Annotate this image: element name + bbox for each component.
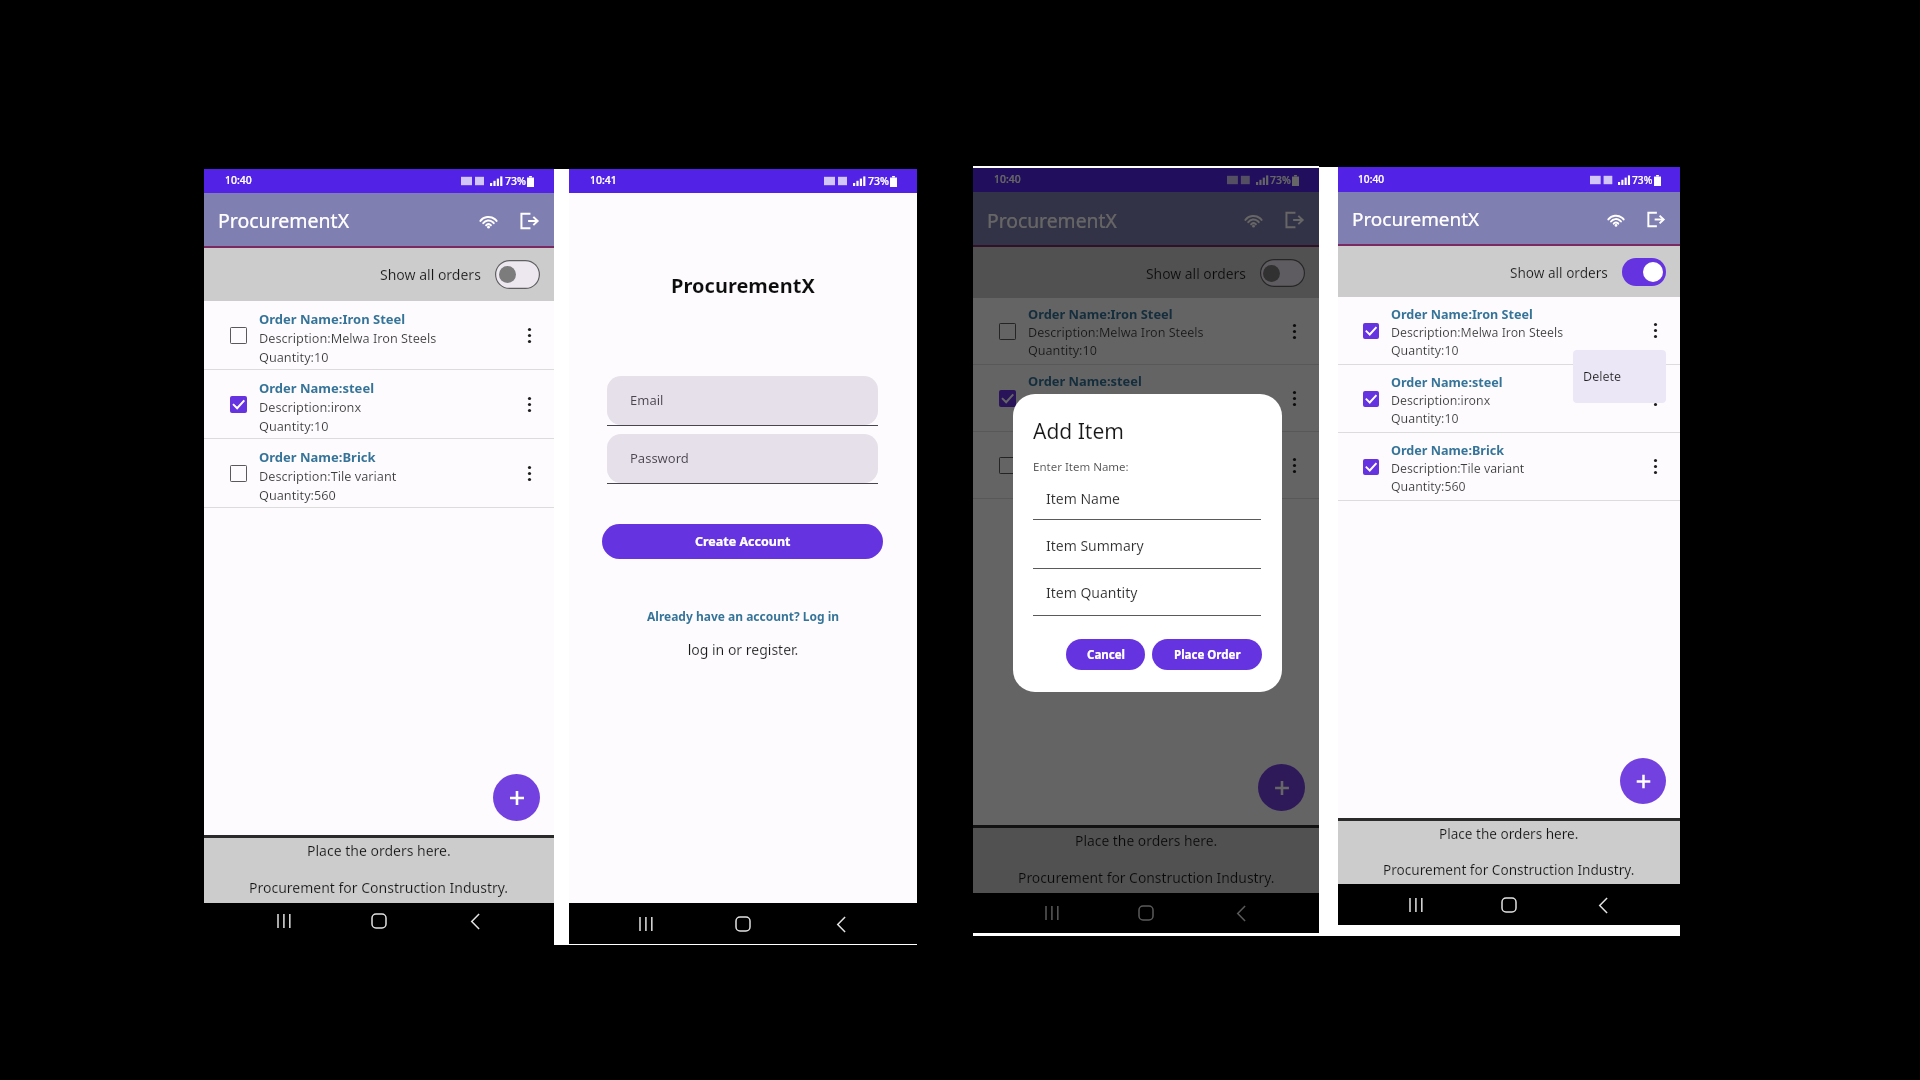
staticText: Quantity:10 bbox=[1028, 409, 1097, 426]
staticText: Place Order bbox=[1174, 647, 1241, 663]
button[interactable]: Order Name:steel bbox=[973, 365, 1319, 431]
staticText: 73% bbox=[868, 174, 889, 188]
staticText: Procurement for Construction Industry. bbox=[249, 878, 509, 897]
button[interactable]: Order Name:Brick bbox=[973, 432, 1319, 498]
button[interactable]: Order Name:Brick bbox=[1338, 433, 1680, 500]
button[interactable]: Wifi bbox=[475, 208, 501, 234]
button[interactable]: Back bbox=[829, 912, 853, 936]
staticText: Description:Melwa Iron Steels bbox=[1391, 324, 1564, 341]
staticText: Show all orders bbox=[1510, 263, 1608, 281]
button[interactable]: Password bbox=[607, 434, 878, 483]
button[interactable]: Delete bbox=[1573, 350, 1666, 403]
staticText: Add Item bbox=[1033, 417, 1124, 445]
button[interactable]: Cancel bbox=[1066, 639, 1145, 670]
button[interactable]: Recents bbox=[1039, 901, 1063, 925]
button[interactable]: More options bbox=[1645, 320, 1666, 341]
button[interactable]: Order Name:Brick bbox=[204, 439, 554, 507]
button[interactable]: Email bbox=[607, 376, 878, 425]
staticText: 73% bbox=[1632, 173, 1653, 187]
button[interactable]: More options bbox=[518, 393, 540, 415]
button[interactable]: More options bbox=[1283, 454, 1305, 476]
staticText: Place the orders here. bbox=[1439, 824, 1579, 842]
staticText: Order Name:Brick bbox=[1391, 442, 1505, 459]
staticText: Item Summary bbox=[1046, 536, 1144, 555]
staticText: Order Name:Iron Steel bbox=[1391, 306, 1533, 323]
staticText: 10:40 bbox=[225, 173, 252, 187]
button[interactable]: Recents bbox=[633, 912, 657, 936]
button[interactable] bbox=[1363, 323, 1379, 339]
button[interactable] bbox=[1363, 459, 1379, 475]
button[interactable]: More options bbox=[518, 324, 540, 346]
staticText: Description:ironx bbox=[1391, 392, 1491, 409]
button[interactable] bbox=[1622, 258, 1666, 286]
button[interactable]: Home bbox=[731, 912, 755, 936]
staticText: Place the orders here. bbox=[307, 841, 451, 860]
button[interactable]: More options bbox=[1283, 320, 1305, 342]
button[interactable]: Add item bbox=[1258, 764, 1305, 811]
button[interactable]: Already have an account? Log in bbox=[569, 608, 917, 624]
button[interactable] bbox=[230, 396, 247, 413]
staticText: 73% bbox=[505, 174, 526, 188]
button[interactable]: Wifi bbox=[1603, 207, 1628, 232]
staticText: Description:Melwa Iron Steels bbox=[259, 329, 437, 346]
staticText: Show all orders bbox=[380, 265, 481, 284]
button[interactable]: More options bbox=[1645, 456, 1666, 477]
button[interactable] bbox=[999, 457, 1016, 474]
button[interactable]: Home bbox=[1497, 893, 1521, 917]
button[interactable] bbox=[495, 260, 540, 289]
button[interactable]: Back bbox=[1591, 893, 1615, 917]
staticText: Procurement for Construction Industry. bbox=[1018, 868, 1275, 887]
button[interactable]: Recents bbox=[271, 909, 295, 933]
staticText: Order Name:steel bbox=[259, 379, 375, 397]
button[interactable]: Place Order bbox=[1152, 639, 1262, 670]
staticText: Delete bbox=[1583, 368, 1622, 385]
staticText: Email bbox=[630, 391, 664, 409]
staticText: Description:Tile variant bbox=[259, 467, 397, 484]
staticText: Already have an account? Log in bbox=[647, 608, 840, 624]
staticText: ProcurementX bbox=[1352, 206, 1480, 232]
staticText: ProcurementX bbox=[569, 272, 917, 299]
staticText: Show all orders bbox=[1146, 264, 1246, 283]
button[interactable]: Create Account bbox=[602, 524, 883, 559]
button[interactable]: Home bbox=[1134, 901, 1158, 925]
staticText: Order Name:Iron Steel bbox=[1028, 305, 1173, 323]
button[interactable]: More options bbox=[518, 462, 540, 484]
staticText: Quantity:10 bbox=[1391, 342, 1459, 359]
button[interactable]: Log out bbox=[1281, 207, 1307, 233]
staticText: Description:ironx bbox=[1028, 391, 1130, 408]
button[interactable]: Home bbox=[367, 909, 391, 933]
button[interactable]: Back bbox=[1229, 901, 1253, 925]
button[interactable]: Log out bbox=[1643, 207, 1668, 232]
staticText: Quantity:560 bbox=[1391, 478, 1466, 495]
button[interactable]: More options bbox=[1283, 387, 1305, 409]
button[interactable]: Order Name:steel bbox=[204, 370, 554, 438]
staticText: Order Name:Brick bbox=[259, 448, 376, 466]
button[interactable]: Order Name:steel bbox=[1338, 365, 1680, 432]
staticText: Order Name:steel bbox=[1391, 374, 1503, 391]
staticText: 10:41 bbox=[590, 173, 617, 187]
staticText: Cancel bbox=[1087, 647, 1125, 663]
staticText: 73% bbox=[1270, 173, 1291, 187]
staticText: Order Name:Iron Steel bbox=[259, 310, 406, 328]
button[interactable] bbox=[230, 465, 247, 482]
button[interactable]: Recents bbox=[1403, 893, 1427, 917]
button[interactable]: Back bbox=[463, 909, 487, 933]
staticText: Description:Melwa Iron Steels bbox=[1028, 324, 1204, 341]
button[interactable]: Add item bbox=[1620, 758, 1666, 804]
button[interactable] bbox=[999, 323, 1016, 340]
staticText: Procurement for Construction Industry. bbox=[1383, 860, 1635, 878]
button[interactable] bbox=[1363, 391, 1379, 407]
button[interactable] bbox=[1260, 259, 1305, 287]
button[interactable] bbox=[230, 327, 247, 344]
button[interactable]: Log out bbox=[516, 208, 542, 234]
staticText: Order Name:steel bbox=[1028, 372, 1142, 390]
button[interactable]: Order Name:Iron Steel bbox=[1338, 297, 1680, 364]
button[interactable]: More options bbox=[1645, 388, 1666, 409]
button[interactable]: Add item bbox=[493, 774, 540, 821]
button[interactable]: Wifi bbox=[1240, 207, 1266, 233]
button[interactable]: Order Name:Iron Steel bbox=[973, 298, 1319, 364]
button[interactable] bbox=[999, 390, 1016, 407]
staticText: ProcurementX bbox=[987, 207, 1117, 233]
button[interactable]: Order Name:Iron Steel bbox=[204, 301, 554, 369]
